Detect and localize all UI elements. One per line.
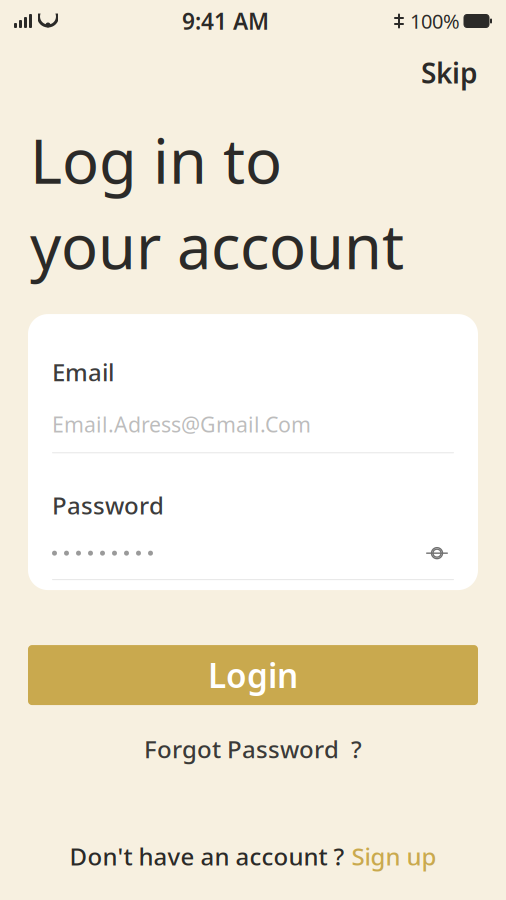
staticText: Log in to	[30, 119, 282, 201]
button[interactable]: Show password	[420, 539, 454, 567]
staticText: Password	[52, 489, 164, 521]
staticText: Login	[208, 653, 298, 697]
staticText: your account	[30, 205, 404, 286]
staticText: Skip	[421, 54, 478, 91]
staticText: Email	[52, 356, 114, 388]
button[interactable]: Sign up	[351, 840, 436, 872]
staticText: Don't have an account ?	[69, 840, 344, 872]
button[interactable]: Login	[28, 645, 478, 705]
button[interactable]: Skip	[411, 48, 488, 97]
staticText: Forgot Password ?	[144, 733, 362, 765]
staticText: Sign up	[351, 840, 436, 872]
staticText: 9:41 AM	[182, 6, 269, 36]
staticText: 100%	[410, 8, 460, 34]
button[interactable]: Forgot Password ?	[134, 727, 372, 771]
staticText: Email.Adress@Gmail.Com	[52, 410, 311, 438]
